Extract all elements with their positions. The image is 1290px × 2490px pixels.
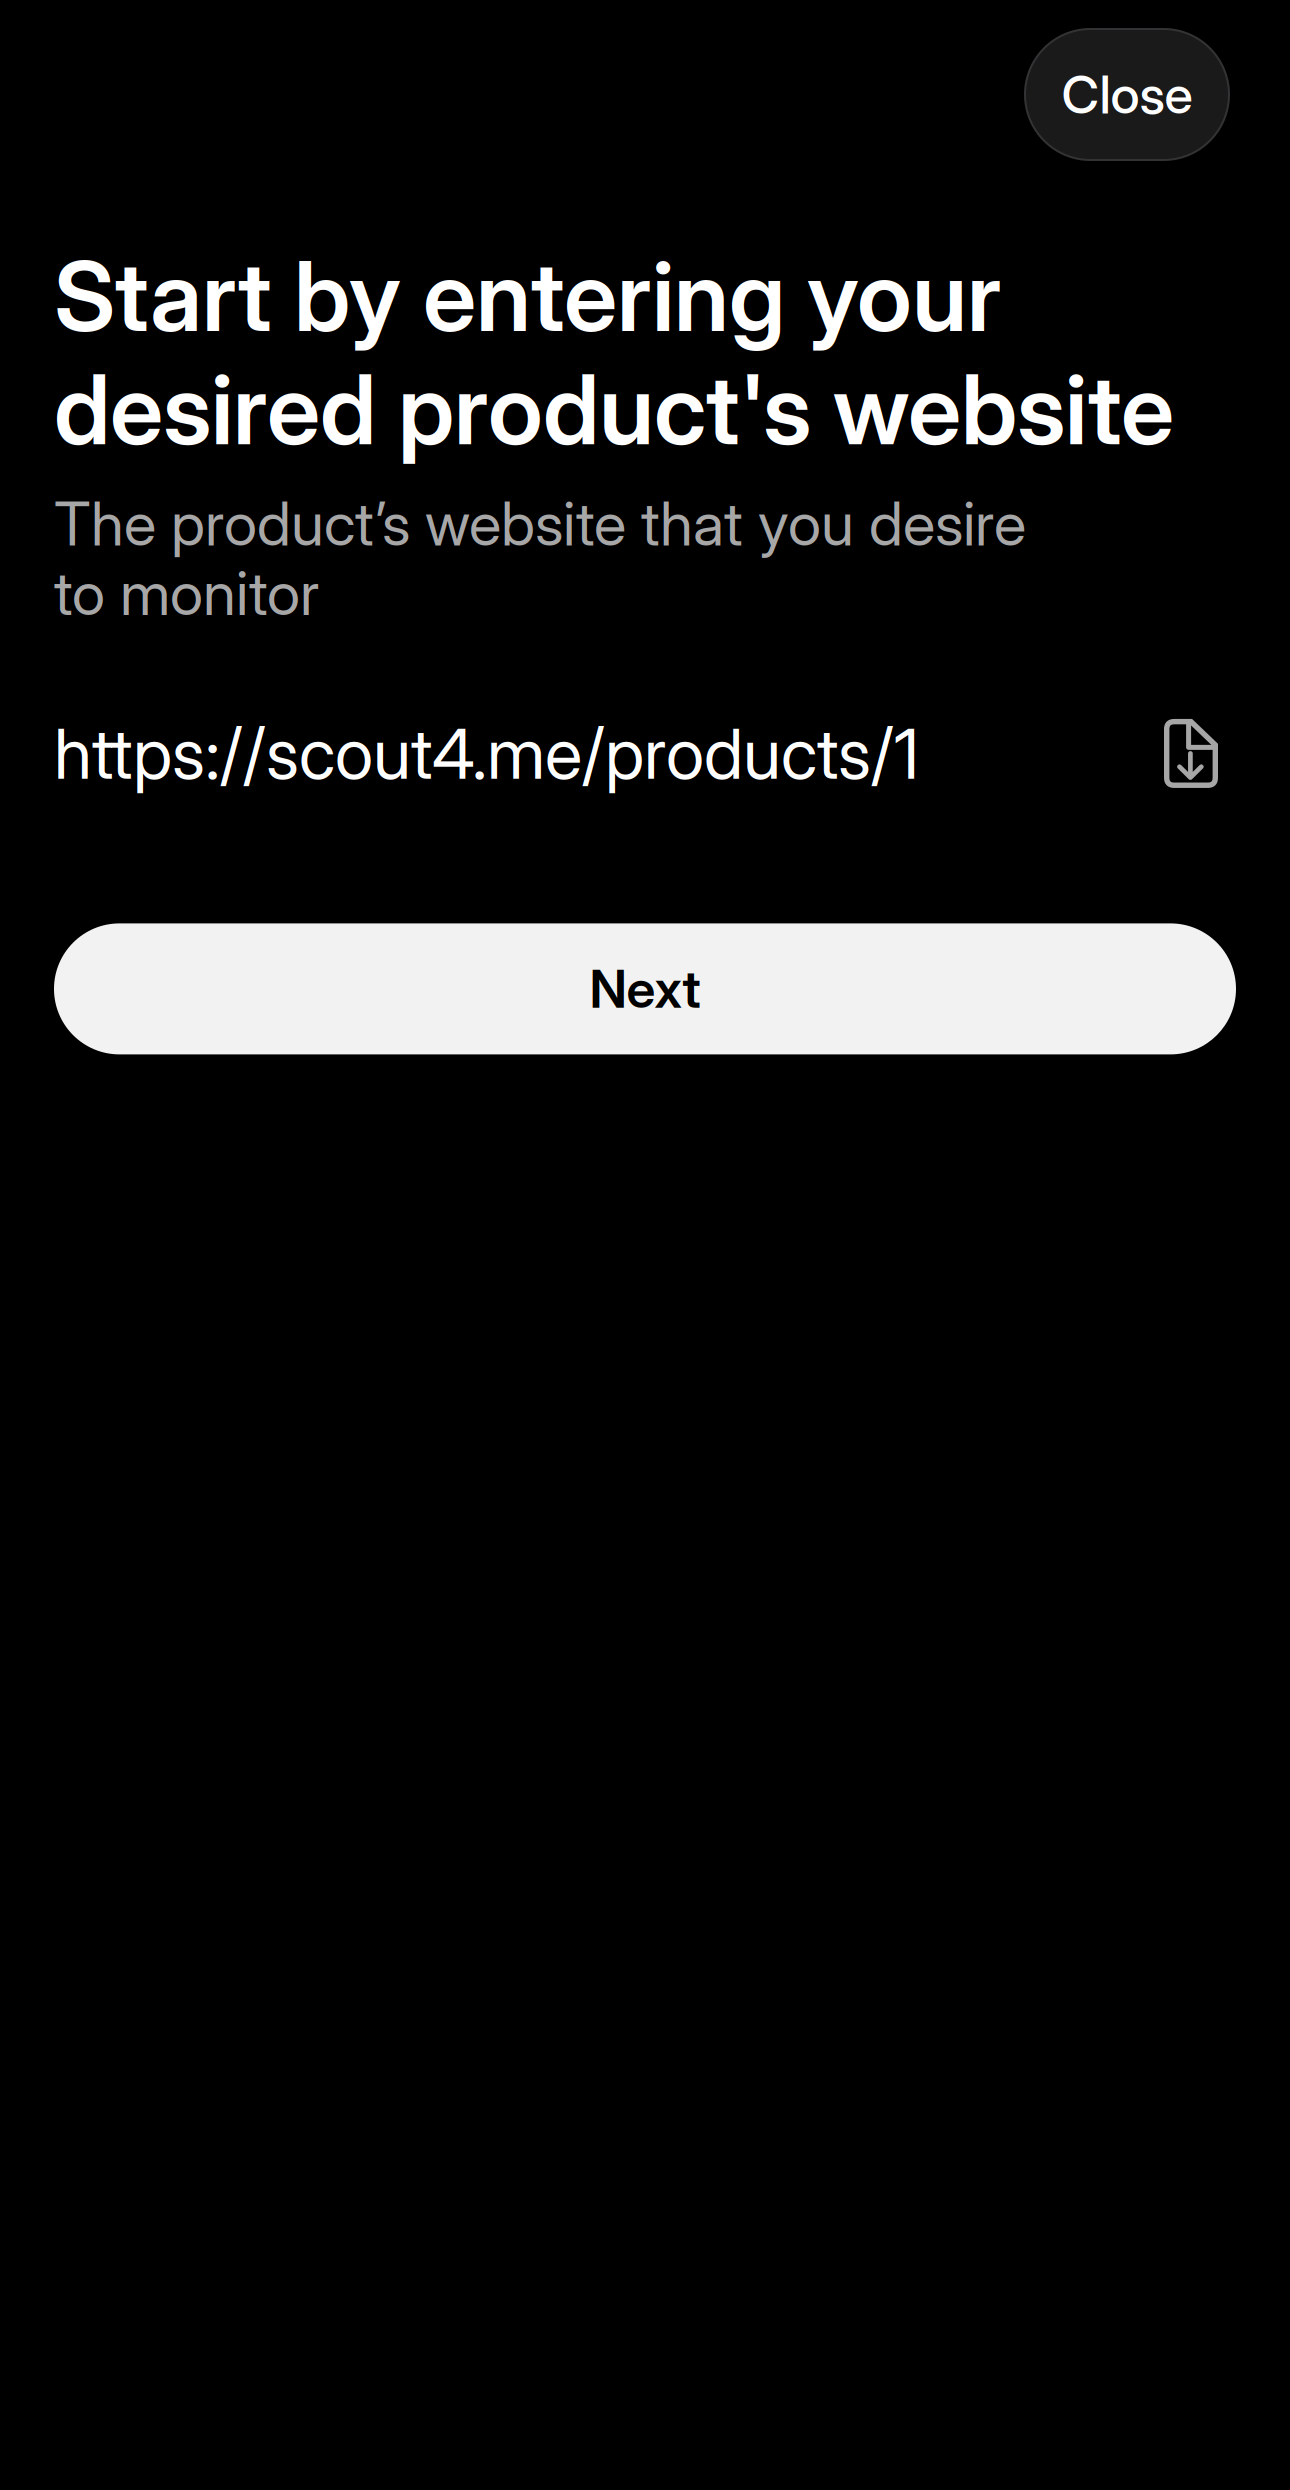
button[interactable]: Next [54, 923, 1236, 1054]
staticText: Next [589, 957, 700, 1020]
button[interactable]: Paste link [1158, 713, 1236, 794]
staticText: https://scout4.me/products/1 [54, 711, 919, 795]
staticText: Close [1061, 63, 1192, 126]
staticText: to monitor [54, 557, 319, 629]
staticText: The product’s website that you desire [54, 487, 1026, 560]
button[interactable]: Close [1025, 29, 1229, 160]
staticText: Start by entering your desired product's… [54, 238, 1174, 467]
